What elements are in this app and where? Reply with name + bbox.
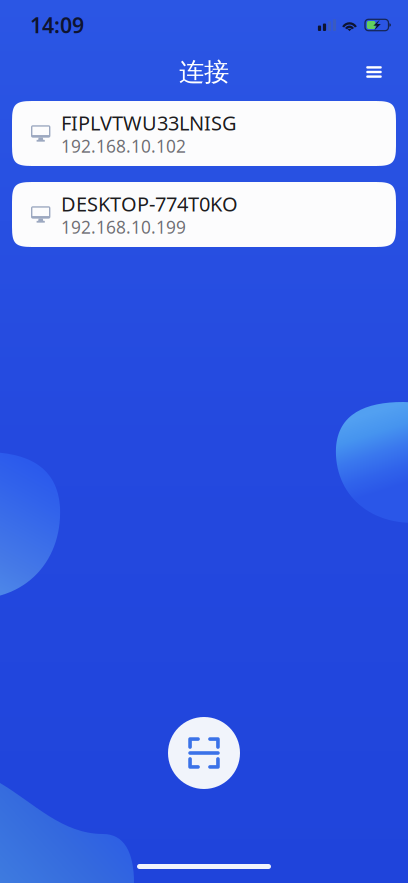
staticText: DESKTOP-774T0KO xyxy=(61,190,238,217)
button[interactable]: Scan xyxy=(168,717,240,789)
staticText: FIPLVTWU33LNISG xyxy=(61,109,237,136)
staticText: 连接 xyxy=(179,56,229,87)
button[interactable]: FIPLVTWU33LNISG xyxy=(12,101,396,166)
button[interactable]: DESKTOP-774T0KO xyxy=(12,182,396,247)
staticText: 14:09 xyxy=(30,11,84,39)
staticText: 192.168.10.102 xyxy=(61,134,186,157)
staticText: 192.168.10.199 xyxy=(61,215,186,238)
button[interactable]: Menu xyxy=(352,50,396,94)
